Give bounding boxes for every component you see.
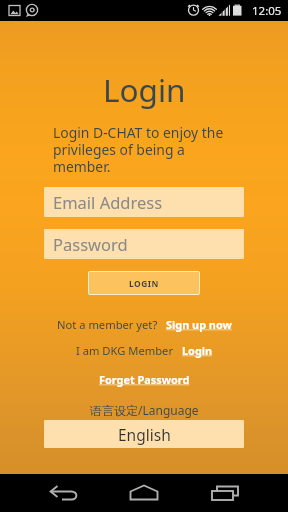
staticText: Not a member yet? (57, 317, 158, 332)
staticText: 语言设定/Language (90, 402, 199, 418)
staticText: Forget Password (99, 372, 190, 387)
button[interactable]: Sign up now (166, 317, 232, 332)
staticText: English (118, 424, 171, 445)
staticText: I am DKG Member (76, 343, 173, 358)
button[interactable]: Forget Password (99, 372, 190, 387)
staticText: 12:05 (252, 3, 282, 19)
button[interactable]: Login (182, 343, 213, 358)
button[interactable]: LOGIN (88, 271, 200, 295)
button[interactable]: Back (42, 474, 86, 512)
staticText: Login (103, 68, 186, 111)
staticText: Login D-CHAT to enjoy the privileges of … (53, 123, 231, 176)
button[interactable]: Email Address (44, 187, 244, 217)
staticText: Email Address (53, 191, 163, 213)
button[interactable]: Password (44, 229, 244, 259)
staticText: Sign up now (166, 317, 232, 332)
staticText: LOGIN (129, 278, 159, 289)
button[interactable]: Recents (200, 474, 244, 512)
button[interactable]: Home (122, 474, 166, 512)
button[interactable]: English (44, 420, 244, 448)
staticText: Password (53, 233, 128, 255)
staticText: Login (182, 343, 213, 358)
